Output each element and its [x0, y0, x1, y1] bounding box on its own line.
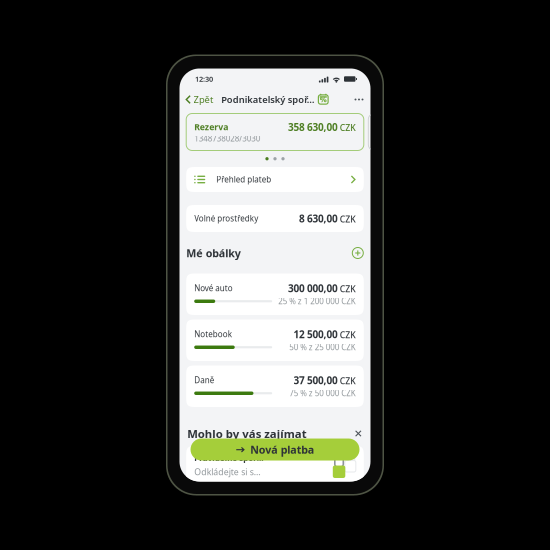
- button[interactable]: Přehled plateb: [193, 265, 548, 315]
- staticText: Podnikatelský spoř…: [263, 118, 450, 143]
- staticText: Zpět: [207, 118, 247, 143]
- button[interactable]: Nové auto: [193, 478, 548, 550]
- staticText: Přehled plateb: [253, 280, 363, 301]
- staticText: Rezerva: [209, 174, 277, 197]
- staticText: Volné prostředky: [209, 358, 337, 379]
- staticText: Mé obálky: [193, 423, 302, 452]
- staticText: 1348738028/3030: [209, 198, 341, 219]
- button[interactable]: Rezerva: [193, 158, 548, 232]
- staticText: 12:30: [210, 80, 246, 99]
- button[interactable]: Zpět: [179, 110, 255, 150]
